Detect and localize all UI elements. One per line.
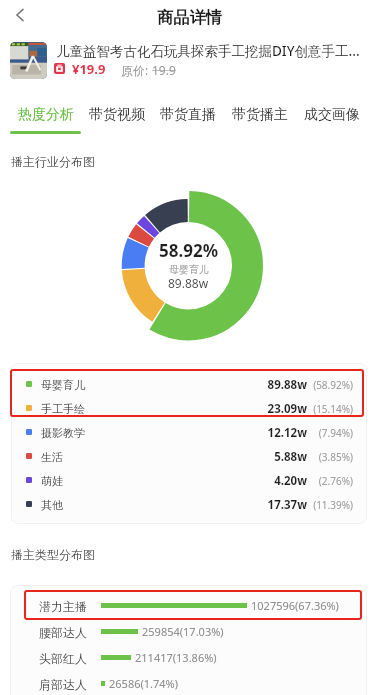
staticText: 17.37w <box>237 497 307 513</box>
staticText: 播主类型分布图 <box>11 547 95 562</box>
staticText: 潜力主播 <box>39 599 87 614</box>
button[interactable]: 腰部达人 <box>10 611 367 637</box>
staticText: 211417(13.86%) <box>135 650 217 665</box>
staticText: (11.39%) <box>307 498 353 512</box>
staticText: 1027596(67.36%) <box>251 598 339 613</box>
staticText: 摄影教学 <box>41 426 85 440</box>
staticText: 成交画像 <box>304 106 360 124</box>
staticText: 89.88w <box>237 377 307 393</box>
staticText: 儿童益智考古化石玩具探索手工挖掘DIY创意手工... <box>56 42 374 60</box>
button[interactable]: 带货视频 <box>81 100 152 134</box>
staticText: 12.12w <box>237 425 307 441</box>
staticText: 播主行业分布图 <box>11 154 95 169</box>
button[interactable]: 生活 <box>11 444 367 468</box>
staticText: 26586(1.74%) <box>109 676 179 691</box>
staticText: 手工手绘 <box>41 402 85 416</box>
staticText: ¥19.9 <box>72 60 106 78</box>
staticText: 原价: <box>121 62 149 78</box>
staticText: 23.09w <box>237 401 307 417</box>
staticText: (15.14%) <box>307 402 353 416</box>
staticText: 热度分析 <box>18 106 74 124</box>
button[interactable]: 萌娃 <box>11 468 367 492</box>
staticText: 58.92% <box>159 239 219 262</box>
staticText: 商品详情 <box>157 7 222 27</box>
staticText: 生活 <box>41 450 63 464</box>
staticText: 母婴育儿 <box>41 378 85 392</box>
button[interactable]: 带货直播 <box>152 100 224 134</box>
staticText: 带货播主 <box>232 106 288 124</box>
staticText: 5.88w <box>237 449 307 465</box>
staticText: (2.76%) <box>307 474 353 488</box>
button[interactable]: 带货播主 <box>224 100 296 134</box>
staticText: 259854(17.03%) <box>142 624 224 639</box>
staticText: 腰部达人 <box>39 625 87 640</box>
button[interactable]: 热度分析 <box>10 100 81 134</box>
button[interactable]: 成交画像 <box>296 100 368 134</box>
button[interactable]: 其他 <box>11 492 367 516</box>
button[interactable]: 潜力主播 <box>10 585 367 611</box>
button[interactable]: 摄影教学 <box>11 420 367 444</box>
staticText: 4.20w <box>237 473 307 489</box>
staticText: 头部红人 <box>39 651 87 666</box>
button[interactable]: 头部红人 <box>10 637 367 663</box>
staticText: 其他 <box>41 498 63 512</box>
staticText: 带货直播 <box>160 106 216 124</box>
button[interactable]: 肩部达人 <box>10 663 367 689</box>
staticText: (3.85%) <box>307 450 353 464</box>
staticText: 萌娃 <box>41 474 63 488</box>
button[interactable]: 母婴育儿 <box>11 372 367 396</box>
staticText: 带货视频 <box>89 106 145 124</box>
staticText: (58.92%) <box>307 378 353 392</box>
button[interactable]: 手工手绘 <box>11 396 367 420</box>
staticText: 19.9 <box>152 62 176 78</box>
staticText: 母婴育儿 <box>169 263 209 276</box>
staticText: (7.94%) <box>307 426 353 440</box>
staticText: 89.88w <box>168 275 209 291</box>
staticText: 肩部达人 <box>39 677 87 692</box>
button[interactable]: Back <box>0 0 40 30</box>
